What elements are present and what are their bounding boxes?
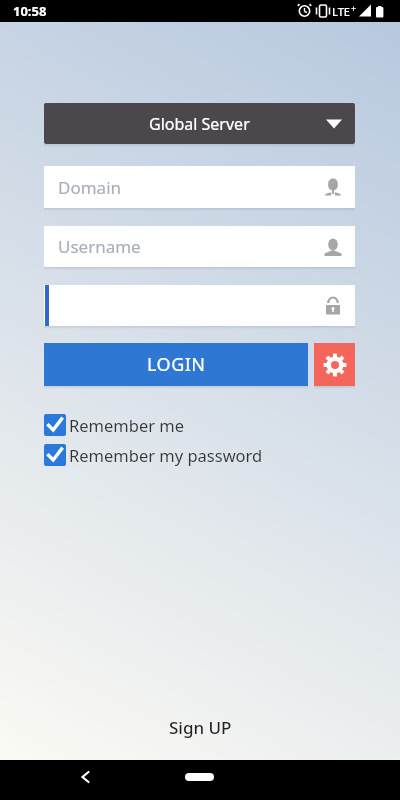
button[interactable]: LOGIN — [44, 343, 308, 386]
button[interactable] — [78, 770, 92, 784]
button[interactable]: Sign UP — [0, 714, 400, 740]
staticText: Remember me — [69, 414, 185, 436]
button[interactable] — [185, 773, 214, 781]
staticText: 10:58 — [13, 2, 47, 20]
button[interactable] — [314, 343, 355, 386]
button[interactable] — [44, 285, 355, 326]
staticText: + — [351, 2, 357, 14]
button[interactable]: Remember me — [44, 414, 185, 436]
staticText: Global Server — [149, 113, 250, 135]
button[interactable]: Remember my password — [44, 444, 263, 466]
staticText: Username — [58, 235, 141, 258]
staticText: Domain — [58, 176, 122, 199]
button[interactable]: Global Server — [44, 103, 355, 144]
staticText: Remember my password — [69, 444, 263, 466]
staticText: Sign UP — [169, 716, 232, 739]
staticText: LOGIN — [147, 352, 206, 377]
button[interactable]: Domain — [44, 166, 355, 208]
button[interactable]: Username — [44, 226, 355, 267]
staticText: LTE — [332, 4, 350, 19]
